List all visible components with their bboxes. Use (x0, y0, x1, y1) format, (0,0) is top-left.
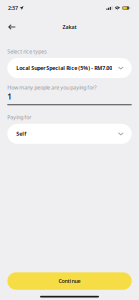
staticText: Zakat (62, 23, 76, 31)
staticText: How many people are you paying for? (7, 84, 96, 91)
staticText: Continue (58, 277, 80, 285)
staticText: Local Super Special Rice (5%) - RM7.00 (16, 64, 112, 72)
button[interactable]: Back (5, 20, 19, 34)
staticText: 1 (7, 91, 12, 102)
staticText: Select rice types (7, 48, 47, 55)
staticText: Paying for (7, 114, 31, 121)
staticText: 2:37 (8, 4, 18, 12)
staticText: Self (16, 130, 26, 137)
button[interactable]: Self (7, 124, 132, 144)
button[interactable]: Continue (7, 272, 132, 290)
button[interactable]: Local Super Special Rice (5%) - RM7.00 (7, 58, 132, 78)
